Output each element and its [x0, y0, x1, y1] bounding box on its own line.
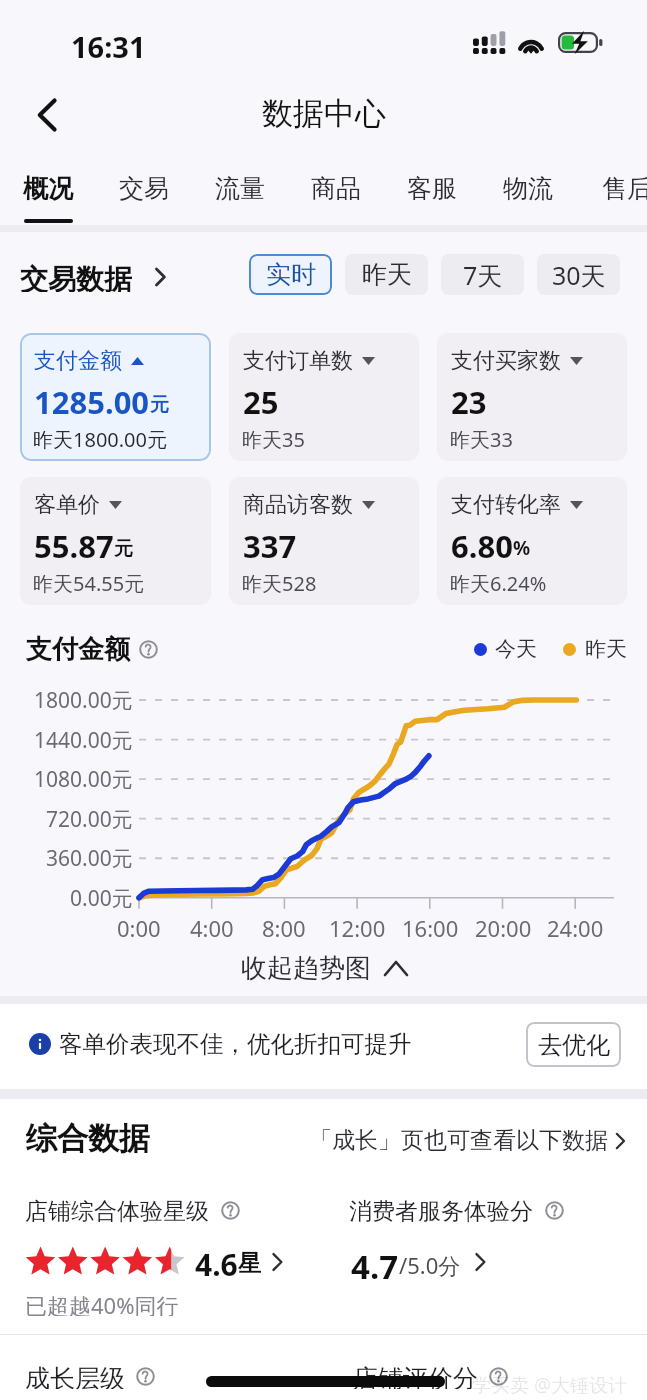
staticText: 1800.00元 — [34, 686, 133, 715]
staticText: 20:00 — [475, 913, 532, 943]
staticText: 店铺综合体验星级 — [25, 1197, 209, 1224]
button[interactable]: 客单价 — [20, 477, 211, 605]
button[interactable]: 店铺综合体验星级 — [25, 1197, 240, 1224]
staticText: 55.87 — [34, 525, 114, 563]
button[interactable]: 概况 — [0, 158, 96, 225]
button[interactable]: Back — [23, 91, 71, 139]
button[interactable]: 交易数据 — [20, 262, 171, 292]
staticText: 昨天35 — [242, 426, 305, 453]
staticText: 昨天 — [362, 259, 412, 290]
staticText: 客单价表现不佳，优化折扣可提升 — [59, 1029, 412, 1059]
staticText: 客服 — [407, 173, 457, 204]
staticText: 元 — [150, 393, 169, 417]
button[interactable]: 昨天 — [345, 254, 428, 295]
staticText: 23 — [451, 381, 487, 419]
staticText: 7天 — [463, 258, 503, 292]
button[interactable]: 物流 — [480, 158, 576, 225]
button[interactable]: 去优化 — [526, 1022, 621, 1067]
staticText: 支付金额 — [26, 633, 130, 666]
button[interactable]: 支付订单数 — [229, 333, 419, 461]
staticText: 昨天528 — [242, 570, 317, 597]
button[interactable]: 收起趋势图 — [0, 948, 647, 988]
staticText: 今天 — [495, 636, 537, 662]
button[interactable]: 店铺评价分 — [353, 1363, 508, 1389]
staticText: 商品 — [311, 173, 361, 204]
button[interactable]: 商品访客数 — [229, 477, 419, 605]
staticText: 1285.00 — [34, 381, 150, 419]
button[interactable]: 成长层级 — [25, 1363, 155, 1389]
staticText: 「成长」页也可查看以下数据 — [309, 1126, 608, 1155]
staticText: 337 — [243, 525, 297, 563]
button[interactable]: 商品 — [288, 158, 384, 225]
staticText: 1080.00元 — [34, 765, 133, 794]
staticText: 昨天33 — [450, 426, 513, 453]
button[interactable]: 7天 — [441, 254, 524, 295]
staticText: 24:00 — [547, 913, 604, 943]
staticText: 概况 — [23, 173, 73, 204]
button[interactable]: 售后 — [579, 158, 647, 225]
button[interactable]: 支付转化率 — [437, 477, 627, 605]
staticText: 昨天 — [585, 636, 627, 662]
button[interactable]: 支付金额 — [26, 628, 158, 670]
staticText: 物流 — [503, 173, 553, 204]
staticText: 8:00 — [262, 913, 306, 943]
staticText: 昨天6.24% — [450, 570, 547, 597]
staticText: 消费者服务体验分 — [349, 1197, 533, 1224]
staticText: 流量 — [215, 173, 265, 204]
staticText: 元 — [114, 537, 133, 561]
staticText: 店铺评价分 — [353, 1363, 478, 1389]
button[interactable]: 4.7 — [351, 1244, 491, 1279]
staticText: 360.00元 — [46, 844, 133, 873]
staticText: 支付订单数 — [243, 347, 353, 375]
staticText: 16:31 — [71, 27, 146, 66]
staticText: 支付买家数 — [451, 347, 561, 375]
staticText: 昨天54.55元 — [33, 570, 145, 597]
button[interactable]: 实时 — [249, 254, 332, 295]
staticText: 交易数据 — [20, 262, 132, 292]
staticText: 星 — [238, 1249, 261, 1278]
button[interactable]: 支付金额 — [20, 333, 211, 461]
button[interactable]: 流量 — [192, 158, 288, 225]
staticText: 昨天1800.00元 — [33, 426, 167, 453]
button[interactable]: 消费者服务体验分 — [349, 1197, 564, 1224]
staticText: 4.7 — [351, 1244, 399, 1279]
staticText: 交易 — [119, 173, 169, 204]
button[interactable]: 4.6 — [25, 1244, 288, 1279]
staticText: 1440.00元 — [34, 726, 133, 755]
staticText: 商品访客数 — [243, 491, 353, 519]
staticText: 25 — [243, 381, 279, 419]
button[interactable]: 30天 — [537, 254, 620, 295]
staticText: 已超越40%同行 — [25, 1290, 179, 1316]
staticText: 客单价 — [34, 491, 100, 519]
staticText: 实时 — [266, 259, 316, 290]
staticText: 0:00 — [117, 913, 161, 943]
staticText: 支付金额 — [34, 347, 122, 375]
staticText: 收起趋势图 — [241, 952, 371, 985]
staticText: 16:00 — [402, 913, 459, 943]
staticText: 去优化 — [538, 1030, 610, 1060]
staticText: % — [513, 535, 531, 561]
button[interactable]: 交易 — [96, 158, 192, 225]
staticText: 售后 — [602, 173, 647, 204]
staticText: 4:00 — [190, 913, 234, 943]
staticText: 0.00元 — [70, 884, 133, 913]
staticText: 6.80 — [451, 525, 513, 563]
button[interactable]: 支付买家数 — [437, 333, 627, 461]
staticText: /5.0分 — [399, 1250, 461, 1280]
staticText: 4.6 — [195, 1244, 238, 1279]
staticText: 720.00元 — [46, 805, 133, 834]
staticText: 12:00 — [329, 913, 386, 943]
staticText: 综合数据 — [26, 1119, 150, 1158]
button[interactable]: 「成长」页也可查看以下数据 — [309, 1126, 630, 1155]
staticText: 成长层级 — [25, 1363, 125, 1389]
staticText: 数据中心 — [262, 94, 386, 133]
staticText: 学买卖 @大锤设计 — [472, 1372, 628, 1398]
staticText: 30天 — [552, 258, 606, 292]
staticText: 支付转化率 — [451, 491, 561, 519]
button[interactable]: 客服 — [384, 158, 480, 225]
